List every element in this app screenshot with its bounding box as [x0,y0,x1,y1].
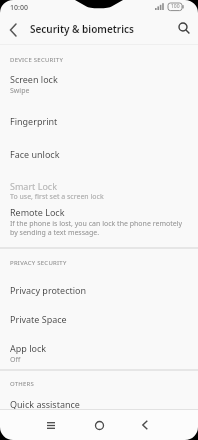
staticText: To use, first set a screen lock [10,192,104,202]
button[interactable] [86,412,112,438]
staticText: Swipe [10,86,30,96]
button[interactable] [132,412,158,438]
button[interactable]: Face unlock [0,138,198,169]
staticText: Privacy protection [10,284,87,296]
staticText: Quick assistance [10,398,80,410]
staticText: Security & biometrics [30,22,134,36]
button[interactable]: Fingerprint [0,105,198,136]
staticText: 100 [171,3,180,10]
staticText: OTHERS [10,380,35,388]
staticText: Private Space [10,313,67,325]
staticText: Remote Lock [10,206,65,218]
staticText: Fingerprint [10,115,58,127]
button[interactable]: App lock [0,337,198,369]
staticText: App lock [10,342,47,354]
staticText: Face unlock [10,148,60,160]
button[interactable] [170,16,198,44]
staticText: DEVICE SECURITY [10,56,64,64]
button[interactable]: Quick assistance [0,396,198,409]
button[interactable]: Screen lock [0,68,198,98]
staticText: Off [10,355,21,365]
button[interactable]: Smart Lock [0,174,198,204]
staticText: PRIVACY SECURITY [10,259,67,267]
button[interactable]: Remote Lock [0,202,198,242]
staticText: If the phone is lost, you can lock the p… [10,219,183,229]
button[interactable]: Private Space [0,303,198,334]
staticText: Screen lock [10,73,58,85]
button[interactable]: Privacy protection [0,274,198,305]
button[interactable] [38,412,64,438]
staticText: 10:00 [10,3,28,13]
staticText: Smart Lock [10,180,57,192]
button[interactable] [0,16,30,44]
staticText: by sending a text message. [10,228,100,238]
